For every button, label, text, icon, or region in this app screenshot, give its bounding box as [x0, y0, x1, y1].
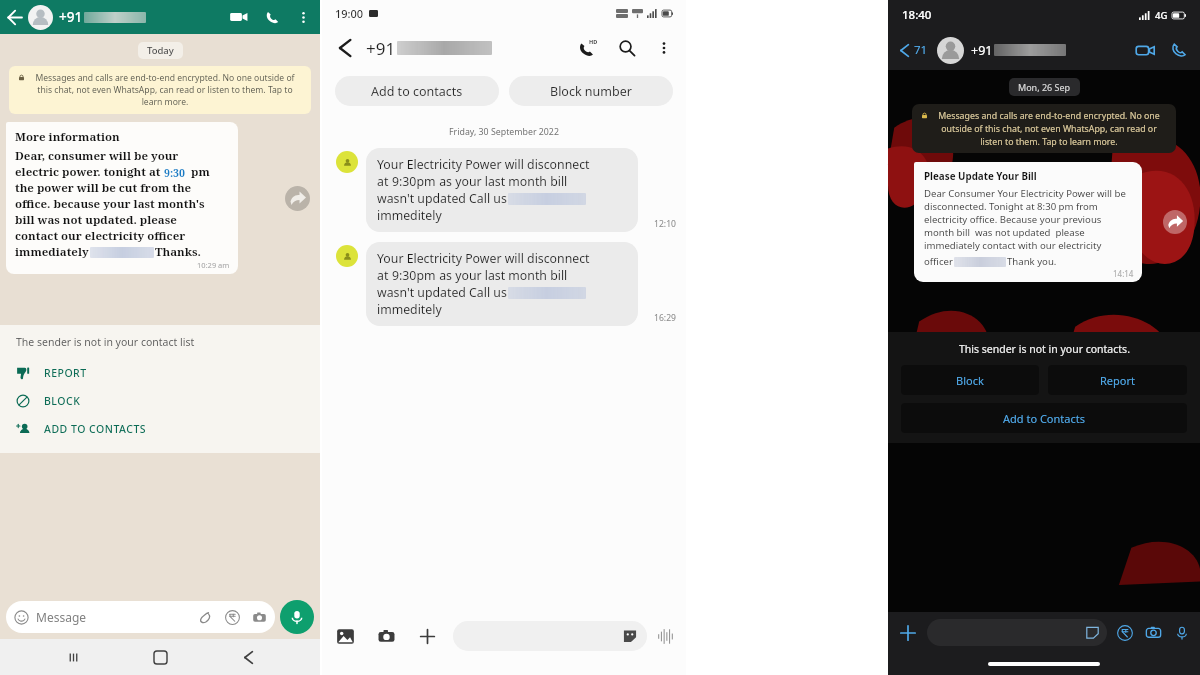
staticText: immeditely [377, 301, 442, 318]
button[interactable]: Back [233, 642, 263, 672]
staticText: wasn't updated Call us [377, 190, 507, 207]
button[interactable]: Report [1048, 365, 1187, 395]
staticText: Messages and calls are end-to-end encryp… [931, 110, 1167, 147]
button[interactable]: Add to Contacts [901, 403, 1187, 433]
staticText: Block [956, 373, 984, 388]
staticText: Message [36, 609, 87, 625]
staticText: HD [589, 38, 598, 45]
button[interactable]: Forward [285, 186, 310, 211]
staticText: bill was not updated. please [15, 212, 177, 228]
staticText: 14:14 [1113, 268, 1134, 279]
staticText: Mon, 26 Sep [1018, 81, 1071, 93]
button[interactable]: Payment [225, 610, 240, 625]
staticText: +91 [59, 8, 83, 26]
staticText: wasn't updated Call us [377, 284, 507, 301]
staticText: immeditely [377, 207, 442, 224]
staticText: Dear Consumer Your Electricity Power wil… [924, 187, 1126, 200]
staticText: contact our electricity officer [15, 228, 186, 244]
button[interactable]: More information [6, 122, 238, 274]
staticText: +91 [366, 37, 396, 60]
staticText: Today [147, 44, 174, 57]
staticText: the power will be cut from the [15, 180, 192, 196]
button[interactable]: Forward [1163, 210, 1187, 234]
staticText: disconnected. Tonight at 8:30 pm from [924, 200, 1098, 213]
staticText: 19:00 [335, 6, 364, 21]
button[interactable]: Profile photo [937, 37, 964, 64]
button[interactable]: Voice message [1174, 625, 1190, 641]
staticText: 9:30pm [392, 267, 436, 284]
staticText: month bill was not updated please [924, 226, 1085, 239]
button[interactable]: Messages and calls are end-to-end encryp… [9, 66, 311, 114]
button[interactable]: Home [145, 642, 175, 672]
staticText: Your Electricity Power will disconnect [377, 250, 590, 267]
button[interactable]: Gallery [336, 627, 355, 646]
staticText: Friday, 30 September 2022 [449, 126, 559, 138]
staticText: 12:10 [654, 218, 676, 230]
staticText: Add to contacts [371, 83, 463, 100]
staticText: electricity office. Because your previou… [924, 213, 1102, 226]
button[interactable]: Video call [229, 10, 248, 24]
button[interactable]: Voice [657, 628, 674, 645]
staticText: BLOCK [44, 394, 81, 408]
button[interactable]: Call [578, 38, 598, 58]
staticText: 10:29 am [197, 260, 230, 270]
button[interactable]: Voice call [1171, 42, 1187, 58]
staticText: at [377, 173, 392, 190]
button[interactable]: Block [901, 365, 1039, 395]
staticText: 4G [1155, 9, 1168, 22]
button[interactable]: Camera [1145, 624, 1162, 641]
button[interactable]: More options [656, 40, 672, 56]
button[interactable] [927, 619, 1107, 646]
button[interactable]: Voice message [280, 600, 314, 634]
button[interactable] [453, 621, 647, 651]
staticText: Add to Contacts [1003, 411, 1085, 426]
button[interactable]: Add attachment [898, 623, 918, 643]
button[interactable]: Add to contacts [335, 76, 499, 106]
button[interactable]: Add [418, 627, 437, 646]
button[interactable]: Please Update Your Bill [914, 162, 1142, 282]
staticText: immediately [15, 244, 89, 260]
button[interactable]: Search [618, 39, 636, 57]
staticText: 9:30pm [392, 173, 436, 190]
staticText: Report [1100, 373, 1135, 388]
button[interactable]: BLOCK [0, 387, 320, 415]
staticText: Messages and calls are end-to-end encryp… [28, 72, 302, 108]
button[interactable]: Your Electricity Power will disconnect [366, 242, 638, 326]
button[interactable]: Attach [198, 610, 213, 625]
staticText: 18:40 [902, 7, 932, 23]
staticText: at [377, 267, 392, 284]
button[interactable]: REPORT [0, 359, 320, 387]
button[interactable]: Payment [1117, 625, 1133, 641]
button[interactable]: Recents [58, 642, 88, 672]
staticText: electric power. tonight at [15, 164, 164, 180]
button[interactable]: Camera [377, 627, 396, 646]
staticText: officer [924, 255, 953, 268]
staticText: as your last month bill [436, 173, 568, 190]
staticText: More information [15, 129, 120, 145]
button[interactable]: Your Electricity Power will disconnect [366, 148, 638, 232]
staticText: +91 [971, 42, 993, 59]
staticText: as your last month bill [436, 267, 568, 284]
button[interactable]: Video call [1135, 43, 1155, 58]
staticText: pm [185, 164, 210, 180]
staticText: Please Update Your Bill [924, 170, 1037, 183]
staticText: Dear, consumer will be your [15, 148, 179, 164]
staticText: ADD TO CONTACTS [44, 422, 147, 436]
button[interactable]: Voice call [265, 10, 280, 25]
button[interactable]: Back [7, 9, 24, 26]
staticText: Your Electricity Power will disconnect [377, 156, 590, 173]
button[interactable]: Message [6, 601, 275, 633]
staticText: 9:30 [164, 166, 185, 180]
staticText: The sender is not in your contact list [16, 335, 195, 349]
button[interactable]: ADD TO CONTACTS [0, 415, 320, 443]
staticText: REPORT [44, 366, 87, 380]
button[interactable]: Messages and calls are end-to-end encryp… [912, 104, 1176, 153]
button[interactable]: Back [898, 44, 911, 57]
staticText: Block number [550, 83, 632, 100]
staticText: immediately contact with our electricity [924, 239, 1102, 252]
button[interactable]: Block number [509, 76, 673, 106]
button[interactable]: Camera [252, 610, 267, 625]
button[interactable]: More options [296, 10, 311, 25]
button[interactable]: Profile photo [28, 5, 53, 30]
button[interactable]: Back [336, 39, 354, 57]
